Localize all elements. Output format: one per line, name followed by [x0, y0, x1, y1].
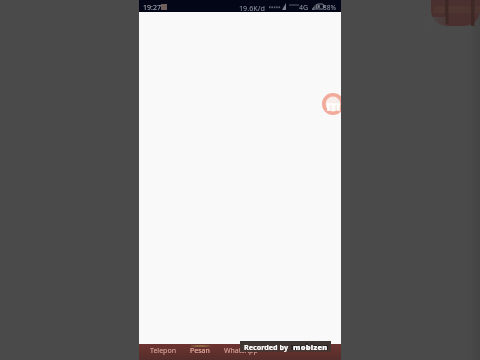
button[interactable]: Pesan: [182, 344, 218, 360]
staticText: 19.6K/d: [239, 3, 265, 13]
staticText: WhatsApp: [224, 346, 258, 356]
staticText: mobizen: [293, 342, 328, 352]
staticText: Recorded by: [244, 342, 289, 352]
button[interactable]: WhatsApp: [218, 344, 264, 360]
staticText: Telepon: [150, 346, 176, 356]
staticText: 4G: [299, 3, 309, 13]
button[interactable]: Telepon: [143, 344, 182, 360]
staticText: 38%: [323, 3, 337, 12]
button[interactable]: Mobizen recorder: [322, 93, 341, 115]
staticText: m: [326, 95, 341, 115]
staticText: Pesan: [190, 346, 210, 356]
staticText: 19:27: [143, 3, 161, 13]
staticText: mobizen: [291, 341, 329, 352]
